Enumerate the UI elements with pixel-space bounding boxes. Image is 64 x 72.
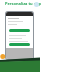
button[interactable]: Personaliza tu app <box>5 1 42 6</box>
button[interactable] <box>9 29 30 32</box>
button[interactable]: Preview <box>34 2 39 7</box>
button[interactable] <box>9 43 30 46</box>
